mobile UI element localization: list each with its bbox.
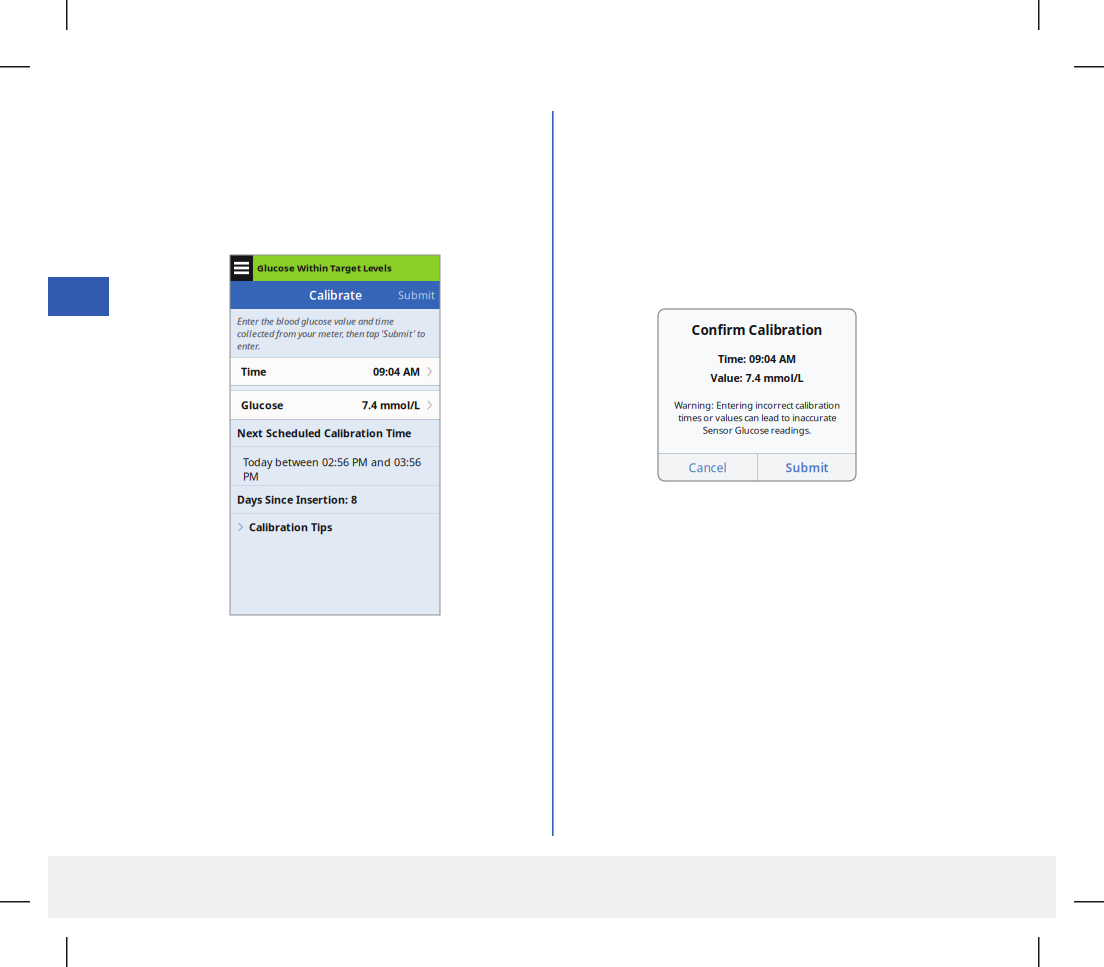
staticText: Today between 02:56 PM and 03:56 PM [243, 455, 421, 483]
staticText: Days Since Insertion: 8 [237, 492, 357, 507]
staticText: Enter the blood glucose value and time c… [237, 315, 425, 352]
staticText: Value: 7.4 mmol/L [710, 371, 803, 385]
staticText: Glucose Within Target Levels [257, 262, 392, 274]
staticText: Submit [398, 288, 435, 302]
button[interactable]: Time [230, 358, 440, 385]
staticText: Cancel [688, 459, 726, 475]
staticText: Calibration Tips [249, 520, 332, 534]
staticText: 09:04 AM [373, 364, 420, 379]
button[interactable]: Calibration Tips [230, 514, 440, 540]
staticText: Next Scheduled Calibration Time [237, 426, 411, 440]
button[interactable]: Cancel [658, 454, 757, 481]
staticText: Confirm Calibration [691, 321, 822, 339]
button[interactable]: Glucose [230, 391, 440, 419]
staticText: Time [241, 364, 266, 379]
staticText: Calibrate [309, 287, 362, 303]
button[interactable]: Submit [390, 283, 440, 307]
staticText: Submit [785, 459, 828, 475]
button[interactable]: Submit [758, 454, 856, 481]
staticText: Glucose [241, 398, 283, 412]
staticText: Time: 09:04 AM [718, 352, 796, 366]
staticText: 7.4 mmol/L [362, 398, 420, 412]
button[interactable]: Menu [230, 255, 253, 281]
staticText: Warning: Entering incorrect calibration … [674, 399, 840, 436]
